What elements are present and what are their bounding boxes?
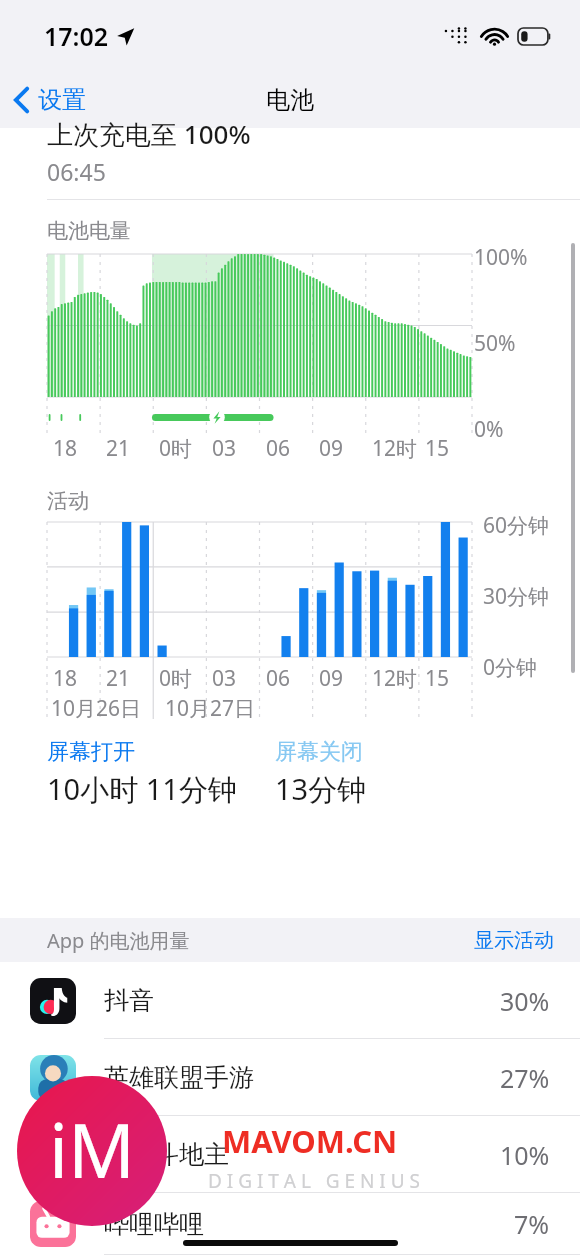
- staticText: 7%: [514, 1207, 550, 1241]
- staticText: 15: [425, 664, 450, 690]
- staticText: D I G I T A L G E N I U S: [208, 1168, 421, 1194]
- staticText: 0%: [474, 415, 504, 444]
- staticText: 09: [319, 664, 344, 690]
- button[interactable]: 设置: [0, 79, 96, 121]
- button[interactable]: 欢乐斗地主: [0, 1116, 580, 1193]
- staticText: 设置: [38, 85, 86, 115]
- staticText: 06: [266, 664, 291, 690]
- staticText: MAVOM.CN: [222, 1120, 398, 1162]
- staticText: 100%: [474, 243, 528, 272]
- staticText: 18: [53, 434, 78, 460]
- staticText: 13分钟: [275, 769, 367, 809]
- staticText: 50%: [474, 329, 516, 358]
- staticText: 10月26日: [51, 694, 142, 723]
- staticText: 活动: [47, 488, 89, 514]
- staticText: 06: [266, 434, 291, 460]
- staticText: 21: [106, 664, 131, 690]
- staticText: 0分钟: [483, 653, 538, 682]
- staticText: 10月27日: [165, 694, 256, 723]
- button[interactable]: 抖音: [0, 962, 580, 1039]
- staticText: 屏幕打开: [47, 738, 135, 766]
- staticText: 17:02: [44, 19, 109, 53]
- staticText: 03: [212, 434, 237, 460]
- button[interactable]: 哔哩哔哩: [0, 1193, 580, 1255]
- staticText: 12时: [372, 434, 418, 460]
- staticText: 60分钟: [483, 511, 550, 540]
- staticText: 上次充电至 100%: [47, 116, 251, 152]
- staticText: 英雄联盟手游: [104, 1062, 500, 1093]
- staticText: 21: [106, 434, 131, 460]
- staticText: 30分钟: [483, 582, 550, 611]
- staticText: 10小时 11分钟: [47, 769, 237, 809]
- staticText: 09: [319, 434, 344, 460]
- staticText: iM: [49, 1099, 136, 1200]
- button[interactable]: 显示活动: [448, 922, 580, 959]
- staticText: 哔哩哔哩: [104, 1209, 514, 1240]
- staticText: 电池: [266, 85, 314, 115]
- button[interactable]: 英雄联盟手游: [0, 1039, 580, 1116]
- staticText: 27%: [500, 1061, 550, 1095]
- staticText: 电池电量: [47, 218, 131, 244]
- staticText: 显示活动: [474, 928, 554, 953]
- staticText: 欢乐斗地主: [104, 1139, 500, 1170]
- staticText: 抖音: [104, 985, 500, 1016]
- staticText: 0时: [159, 664, 193, 690]
- staticText: 18: [53, 664, 78, 690]
- staticText: 03: [212, 664, 237, 690]
- staticText: 0时: [159, 434, 193, 460]
- staticText: 12时: [372, 664, 418, 690]
- staticText: App 的电池用量: [47, 927, 190, 954]
- staticText: 屏幕关闭: [275, 738, 363, 766]
- staticText: 15: [425, 434, 450, 460]
- staticText: 30%: [500, 984, 550, 1018]
- staticText: 06:45: [47, 156, 106, 187]
- staticText: 10%: [500, 1138, 550, 1172]
